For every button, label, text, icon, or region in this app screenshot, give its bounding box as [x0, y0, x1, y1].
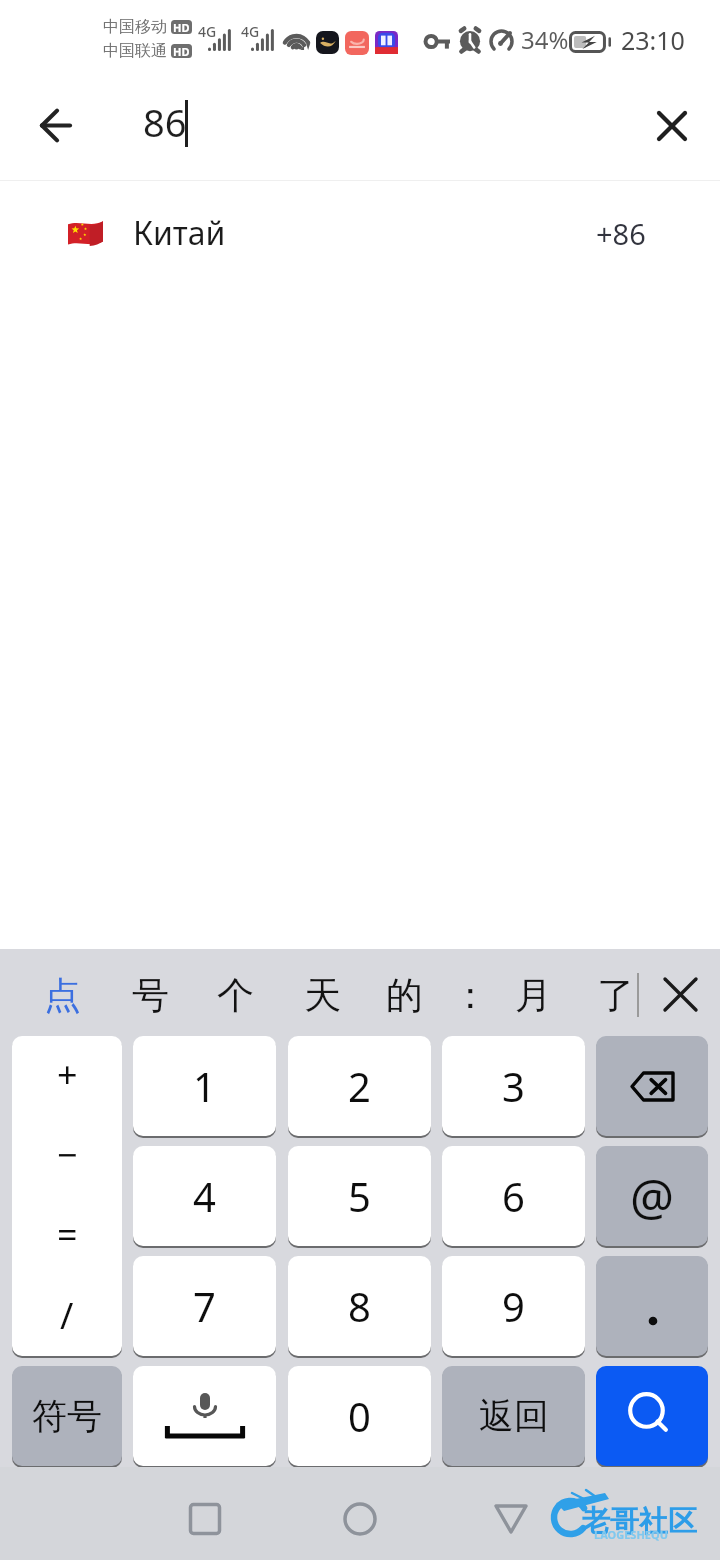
- staticText: −: [57, 1130, 78, 1178]
- staticText: HD: [173, 20, 190, 34]
- button[interactable]: 7: [133, 1256, 276, 1356]
- button[interactable]: 月: [503, 963, 563, 1027]
- staticText: 中国联通: [103, 41, 167, 61]
- button[interactable]: [596, 1256, 708, 1356]
- button[interactable]: Back: [471, 1479, 551, 1559]
- staticText: 8: [348, 1279, 371, 1333]
- staticText: 返回: [479, 1394, 549, 1438]
- button[interactable]: 9: [442, 1256, 585, 1356]
- staticText: LAOGESHEQU: [594, 1527, 669, 1542]
- staticText: 中国移动: [103, 17, 167, 37]
- staticText: 34%: [521, 23, 569, 56]
- button[interactable]: ：: [440, 963, 500, 1027]
- staticText: 符号: [32, 1394, 102, 1438]
- staticText: 了: [597, 972, 634, 1019]
- button[interactable]: 4: [133, 1146, 276, 1246]
- button[interactable]: 个: [205, 963, 265, 1027]
- staticText: 4G: [241, 22, 260, 41]
- staticText: 86: [143, 96, 187, 148]
- staticText: 6: [502, 1169, 525, 1223]
- staticText: 天: [304, 972, 341, 1019]
- staticText: 5: [348, 1169, 371, 1223]
- button[interactable]: 的: [374, 963, 434, 1027]
- button[interactable]: Clear: [624, 78, 720, 174]
- staticText: 3: [502, 1059, 525, 1113]
- button[interactable]: 2: [288, 1036, 431, 1136]
- button[interactable]: 3: [442, 1036, 585, 1136]
- button[interactable]: +: [12, 1036, 122, 1356]
- button[interactable]: Recents: [165, 1479, 245, 1559]
- staticText: 4G: [198, 22, 217, 41]
- button[interactable]: 号: [120, 963, 180, 1027]
- button[interactable]: Китай: [0, 181, 720, 285]
- button[interactable]: 5: [288, 1146, 431, 1246]
- staticText: Китай: [133, 211, 226, 255]
- button[interactable]: Backspace: [596, 1036, 708, 1136]
- button[interactable]: Space: [133, 1366, 276, 1466]
- staticText: 个: [217, 972, 254, 1019]
- button[interactable]: 了: [585, 963, 645, 1027]
- button[interactable]: Hide keyboard: [650, 964, 710, 1024]
- button[interactable]: @: [596, 1146, 708, 1246]
- staticText: =: [57, 1210, 78, 1258]
- staticText: @: [630, 1163, 675, 1230]
- button[interactable]: 1: [133, 1036, 276, 1136]
- staticText: HD: [173, 44, 190, 58]
- button[interactable]: 返回: [442, 1366, 585, 1466]
- staticText: 老哥社区: [581, 1503, 697, 1540]
- button[interactable]: 0: [288, 1366, 431, 1466]
- button[interactable]: 8: [288, 1256, 431, 1356]
- staticText: 0: [348, 1389, 371, 1443]
- staticText: ：: [452, 972, 489, 1019]
- staticText: 号: [132, 972, 169, 1019]
- staticText: 的: [386, 972, 423, 1019]
- staticText: +: [57, 1050, 78, 1098]
- staticText: /: [60, 1291, 74, 1339]
- staticText: +86: [596, 214, 646, 253]
- staticText: 7: [193, 1279, 216, 1333]
- staticText: 月: [515, 972, 552, 1019]
- staticText: 23:10: [621, 23, 685, 57]
- button[interactable]: 天: [292, 963, 352, 1027]
- staticText: 9: [502, 1279, 525, 1333]
- staticText: 点: [44, 972, 81, 1019]
- button[interactable]: Home: [320, 1479, 400, 1559]
- button[interactable]: Search: [596, 1366, 708, 1466]
- staticText: 2: [348, 1059, 371, 1113]
- button[interactable]: 6: [442, 1146, 585, 1246]
- button[interactable]: Back: [7, 77, 103, 173]
- staticText: 1: [193, 1059, 216, 1113]
- button[interactable]: 点: [32, 963, 92, 1027]
- staticText: 4: [193, 1169, 216, 1223]
- button[interactable]: 符号: [12, 1366, 122, 1466]
